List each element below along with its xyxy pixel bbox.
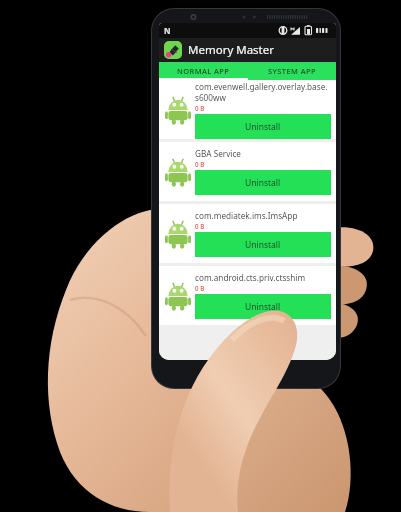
staticText: Uninstall [245, 121, 281, 133]
staticText: Uninstall [245, 301, 281, 313]
staticText: com.android.cts.priv.ctsshim [195, 272, 306, 283]
button[interactable]: Uninstall [195, 170, 331, 195]
staticText: 0 B [195, 222, 205, 230]
staticText: GBA Service [195, 148, 241, 159]
button[interactable]: GBA Service [159, 142, 336, 201]
staticText: N [164, 25, 171, 36]
staticText: 0 B [195, 104, 205, 112]
button[interactable]: Memory Master app icon [164, 41, 182, 59]
button[interactable]: Uninstall [195, 232, 331, 257]
staticText: 0 B [195, 160, 205, 168]
staticText: 0 B [195, 284, 205, 292]
button[interactable]: Uninstall [195, 294, 331, 319]
button[interactable]: com.mediatek.ims.ImsApp [159, 204, 336, 263]
staticText: com.evenwell.gallery.overlay.base.s600ww [195, 81, 331, 103]
staticText: Uninstall [245, 239, 281, 251]
staticText: com.mediatek.ims.ImsApp [195, 210, 298, 221]
button[interactable]: com.android.cts.priv.ctsshim [159, 266, 336, 325]
staticText: Uninstall [245, 177, 281, 189]
button[interactable]: com.evenwell.gallery.overlay.base.s600ww [159, 80, 336, 139]
staticText: NORMAL APP [177, 66, 230, 76]
button[interactable]: NORMAL APP [159, 62, 247, 80]
staticText: SYSTEM APP [268, 66, 316, 76]
button[interactable]: SYSTEM APP [247, 62, 336, 80]
button[interactable]: Uninstall [195, 114, 331, 139]
staticText: Memory Master [188, 42, 275, 58]
